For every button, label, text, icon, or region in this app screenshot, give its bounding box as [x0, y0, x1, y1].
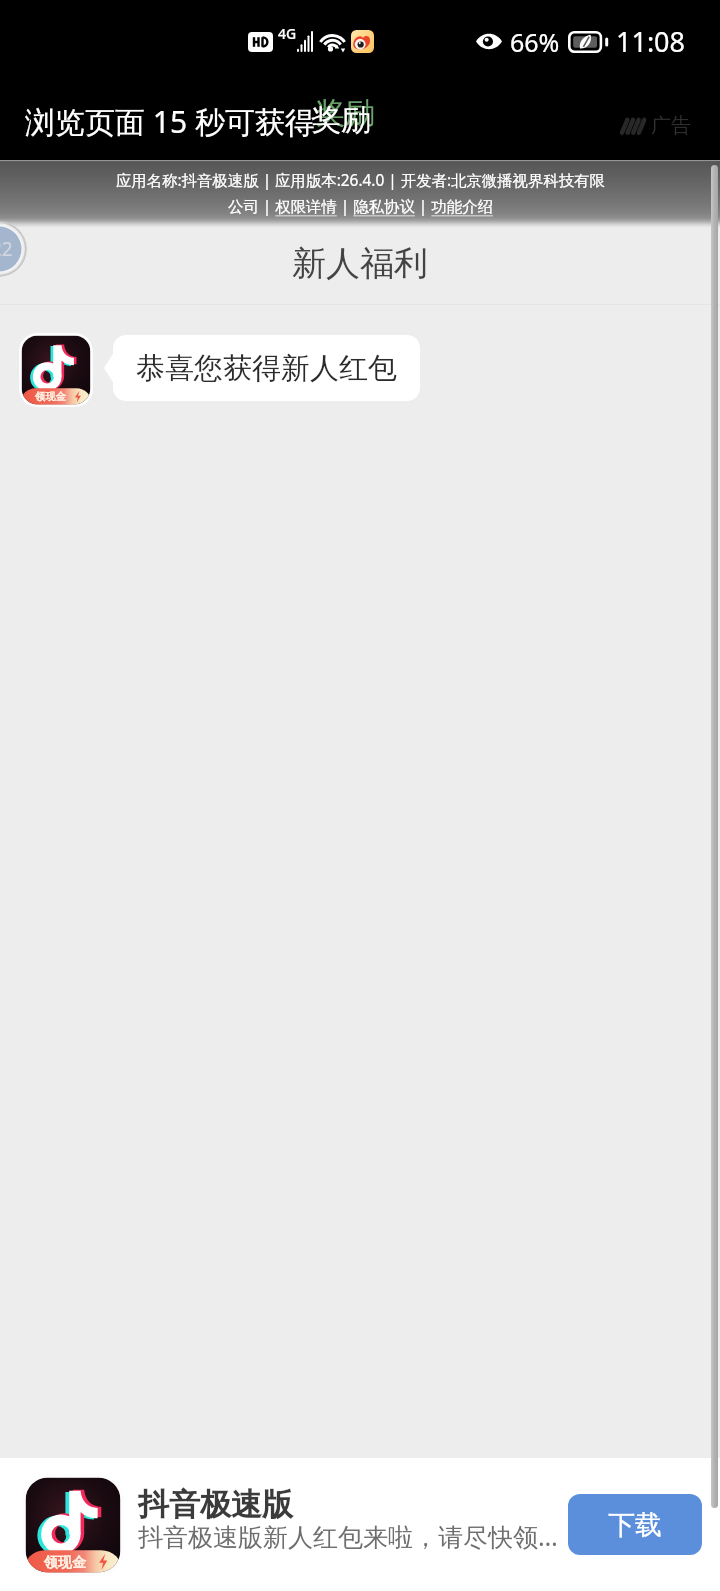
staticText: 新人福利 — [292, 242, 428, 285]
staticText: 领现金 — [35, 390, 66, 403]
staticText: 11:08 — [616, 23, 686, 60]
staticText: 领现金 — [44, 1553, 87, 1571]
button[interactable]: 恭喜您获得新人红包 — [113, 335, 420, 401]
staticText: 恭喜您获得新人红包 — [136, 350, 397, 387]
staticText: 广告 — [651, 113, 691, 138]
button[interactable]: 下载 — [568, 1494, 702, 1555]
button[interactable]: Countdown timer — [0, 221, 27, 277]
staticText: 奖励 — [311, 101, 371, 139]
staticText: 下载 — [608, 1508, 662, 1542]
button[interactable]: 公司 | 权限详情 | 隐私协议 | 功能介绍 — [228, 196, 493, 217]
staticText: 奖励 — [315, 94, 375, 132]
staticText: 4G — [278, 24, 297, 43]
staticText: 22 — [0, 236, 13, 262]
staticText: 浏览页面 15 秒可获得 — [25, 101, 315, 142]
staticText: 抖音极速版新人红包来啦，请尽快领… — [138, 1519, 558, 1553]
staticText: 66% — [510, 25, 560, 59]
staticText: 抖音极速版 — [138, 1485, 293, 1524]
staticText: 应用名称:抖音极速版 | 应用版本:26.4.0 | 开发者:北京微播视界科技有… — [116, 170, 605, 191]
